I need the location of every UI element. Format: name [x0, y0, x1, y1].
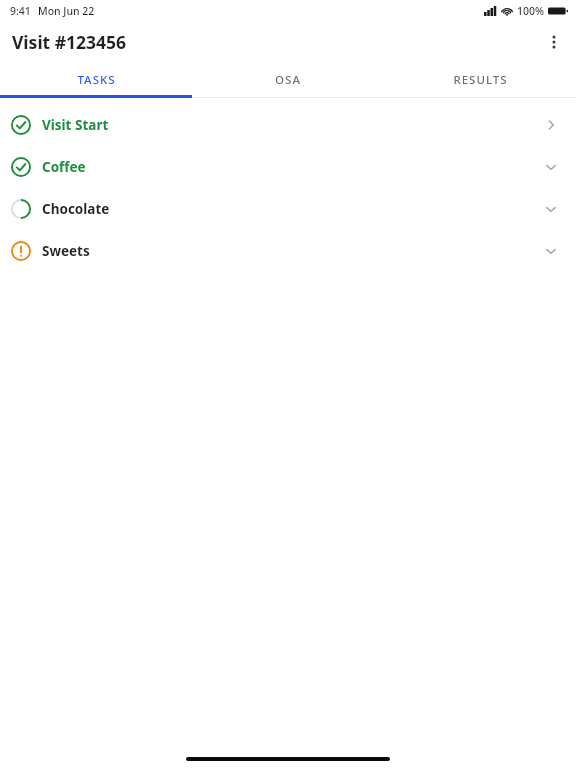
staticText: OSA: [275, 72, 301, 88]
other: Expand: [530, 188, 572, 230]
staticText: 100%: [517, 4, 544, 18]
button[interactable]: Coffee: [0, 146, 576, 188]
other: Open: [530, 104, 572, 146]
staticText: RESULTS: [453, 72, 508, 88]
staticText: Visit Start: [42, 116, 109, 134]
other: Expand: [530, 230, 572, 272]
staticText: Mon Jun 22: [38, 4, 95, 18]
staticText: Visit #123456: [12, 30, 127, 54]
staticText: TASKS: [77, 72, 116, 88]
button[interactable]: Sweets: [0, 230, 576, 272]
button[interactable]: RESULTS: [384, 62, 576, 98]
other: Expand: [530, 146, 572, 188]
staticText: 9:41: [10, 4, 31, 18]
button[interactable]: TASKS: [0, 62, 192, 98]
button[interactable]: OSA: [192, 62, 384, 98]
button[interactable]: Visit Start: [0, 104, 576, 146]
staticText: Coffee: [42, 158, 86, 176]
staticText: Chocolate: [42, 200, 110, 218]
staticText: Sweets: [42, 242, 90, 260]
button[interactable]: More options: [532, 22, 576, 62]
button[interactable]: Chocolate: [0, 188, 576, 230]
